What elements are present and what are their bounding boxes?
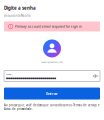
button[interactable]: Entrar bbox=[4, 87, 100, 99]
staticText: ●●●●●●●●●●●●●●●●●●●●●●●●● bbox=[6, 77, 56, 79]
staticText: de sua conta Mozilla bbox=[4, 14, 30, 17]
staticText: Digite a senha bbox=[4, 5, 36, 11]
button[interactable]: Senha bbox=[4, 70, 100, 81]
staticText: usuario@exemplo.com bbox=[41, 60, 63, 63]
staticText: Ao prosseguir, você declara que concorda… bbox=[4, 103, 100, 111]
staticText: Senha bbox=[6, 73, 11, 76]
staticText: Entrar bbox=[46, 91, 58, 96]
staticText: Primary account email required for sign … bbox=[15, 24, 82, 29]
